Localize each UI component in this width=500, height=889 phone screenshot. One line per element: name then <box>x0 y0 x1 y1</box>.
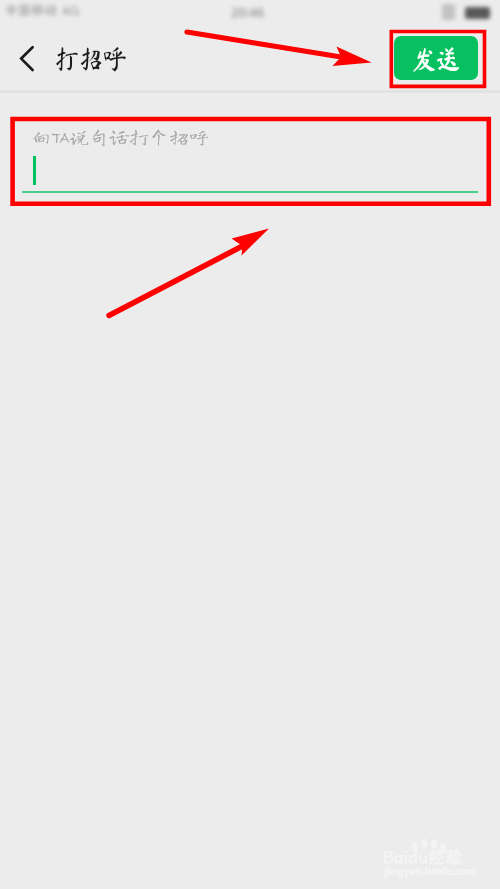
button[interactable]: 向TA说句话打个招呼 <box>22 115 478 193</box>
staticText: Baidu经验 <box>383 845 463 867</box>
staticText: 20:46 <box>231 3 265 21</box>
staticText: 中国移动 4G <box>5 2 80 19</box>
staticText: 发送 <box>412 46 460 72</box>
staticText: 向TA说句话打个招呼 <box>31 126 210 146</box>
button[interactable]: 发送 <box>394 36 478 80</box>
staticText: 打招呼 <box>55 45 127 73</box>
button[interactable]: Back <box>8 36 48 80</box>
staticText: jingyan.baidu.com <box>385 864 477 878</box>
